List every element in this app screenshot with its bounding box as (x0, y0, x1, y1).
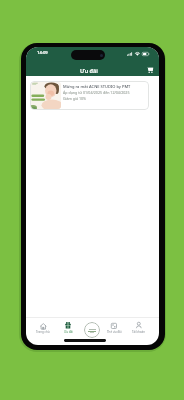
staticText: Áp dụng từ 01/04/2025 đến 12/04/2025 (63, 90, 130, 95)
staticText: Ưu đãi (64, 330, 73, 334)
staticText: 14:09 (37, 50, 48, 56)
staticText: Mừng ra mắt ACNE STUDIO by PMT (63, 84, 131, 89)
button[interactable]: Thẻ ưu đãi (102, 320, 126, 336)
button[interactable]: Mừng ra mắt ACNE STUDIO by PMT (30, 81, 149, 110)
button[interactable]: Tài khoản (127, 320, 151, 336)
button[interactable] (146, 66, 154, 74)
staticText: Thẻ ưu đãi (107, 330, 122, 334)
staticText: Giảm giá 10% (63, 96, 87, 101)
button[interactable]: Ưu đãi (56, 320, 80, 336)
staticText: Trang chủ (36, 330, 50, 334)
staticText: Ưu đãi (80, 67, 98, 74)
staticText: Tài khoản (132, 330, 146, 334)
button[interactable]: Trang chủ (31, 320, 55, 336)
button[interactable] (84, 322, 100, 338)
